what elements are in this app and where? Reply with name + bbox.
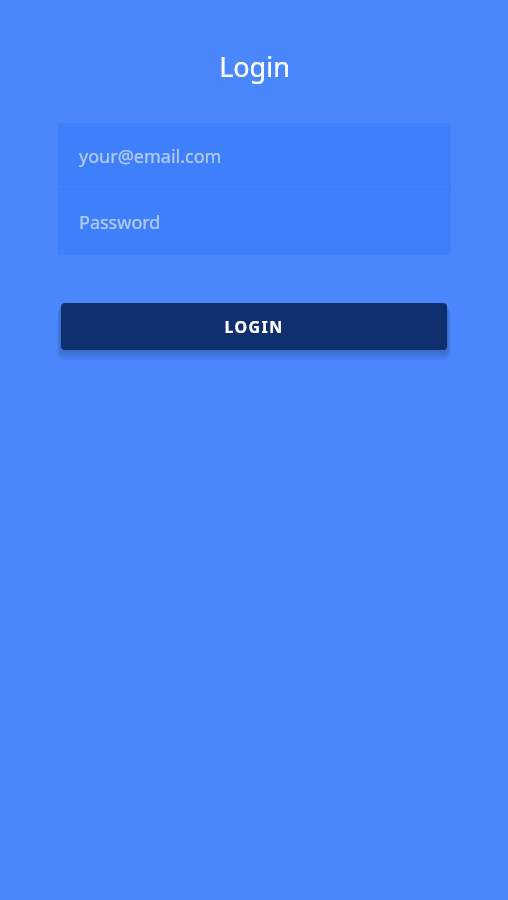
button[interactable]: your@email.com	[58, 123, 451, 189]
staticText: LOGIN	[224, 316, 284, 338]
button[interactable]: Password	[58, 190, 451, 255]
staticText: Login	[219, 48, 290, 85]
staticText: your@email.com	[79, 144, 222, 169]
button[interactable]: LOGIN	[61, 303, 447, 350]
staticText: Password	[79, 210, 161, 235]
